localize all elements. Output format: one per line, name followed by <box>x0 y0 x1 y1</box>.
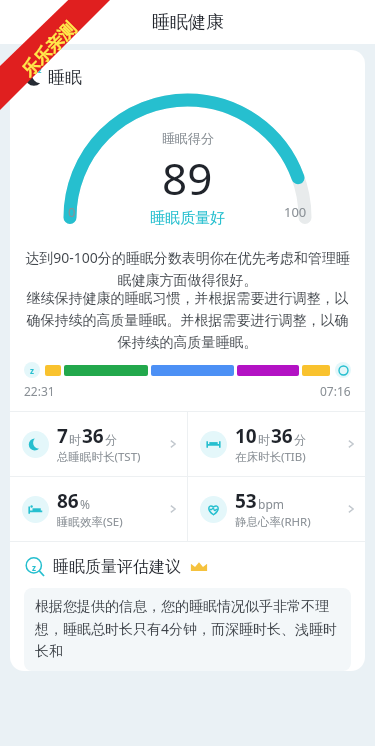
staticText: 10 <box>235 423 257 449</box>
staticText: 达到90-100分的睡眠分数表明你在优先考虑和管理睡眠健康方面做得很好。 <box>24 248 351 290</box>
staticText: 7 <box>57 423 68 449</box>
staticText: 07:16 <box>320 383 351 399</box>
staticText: 36 <box>271 423 293 449</box>
staticText: 静息心率(RHR) <box>235 514 311 530</box>
staticText: 36 <box>82 423 104 449</box>
staticText: 在床时长(TIB) <box>235 449 306 465</box>
staticText: 根据您提供的信息，您的睡眠情况似乎非常不理想，睡眠总时长只有4分钟，而深睡时长、… <box>35 598 340 661</box>
staticText: z <box>32 562 36 573</box>
staticText: 睡眠效率(SE) <box>57 514 123 530</box>
staticText: 89 <box>162 148 213 208</box>
staticText: z <box>38 66 42 76</box>
staticText: 睡眠质量好 <box>150 209 225 228</box>
staticText: z <box>30 365 34 376</box>
staticText: 分 <box>294 432 306 447</box>
staticText: % <box>80 496 90 512</box>
button[interactable]: 86 <box>10 477 187 541</box>
staticText: 睡眠质量评估建议 <box>53 557 181 577</box>
staticText: bpm <box>258 496 284 512</box>
staticText: 0 <box>68 203 76 221</box>
staticText: 100 <box>284 203 307 221</box>
staticText: 总睡眠时长(TST) <box>57 449 141 465</box>
staticText: 睡眠健康 <box>152 11 224 34</box>
staticText: 86 <box>57 488 79 514</box>
staticText: 时 <box>258 432 270 447</box>
staticText: 分 <box>105 432 117 447</box>
button[interactable]: 53 <box>188 477 365 541</box>
staticText: 继续保持健康的睡眠习惯，并根据需要进行调整，以确保持续的高质量睡眠。并根据需要进… <box>24 290 351 352</box>
staticText: 53 <box>235 488 257 514</box>
staticText: 睡眠 <box>48 67 82 88</box>
staticText: 乐乐亲测 <box>17 18 80 81</box>
staticText: 22:31 <box>24 383 55 399</box>
button[interactable]: 10 <box>188 412 365 476</box>
staticText: 时 <box>69 432 81 447</box>
staticText: 睡眠得分 <box>162 130 214 146</box>
button[interactable]: 7 <box>10 412 187 476</box>
